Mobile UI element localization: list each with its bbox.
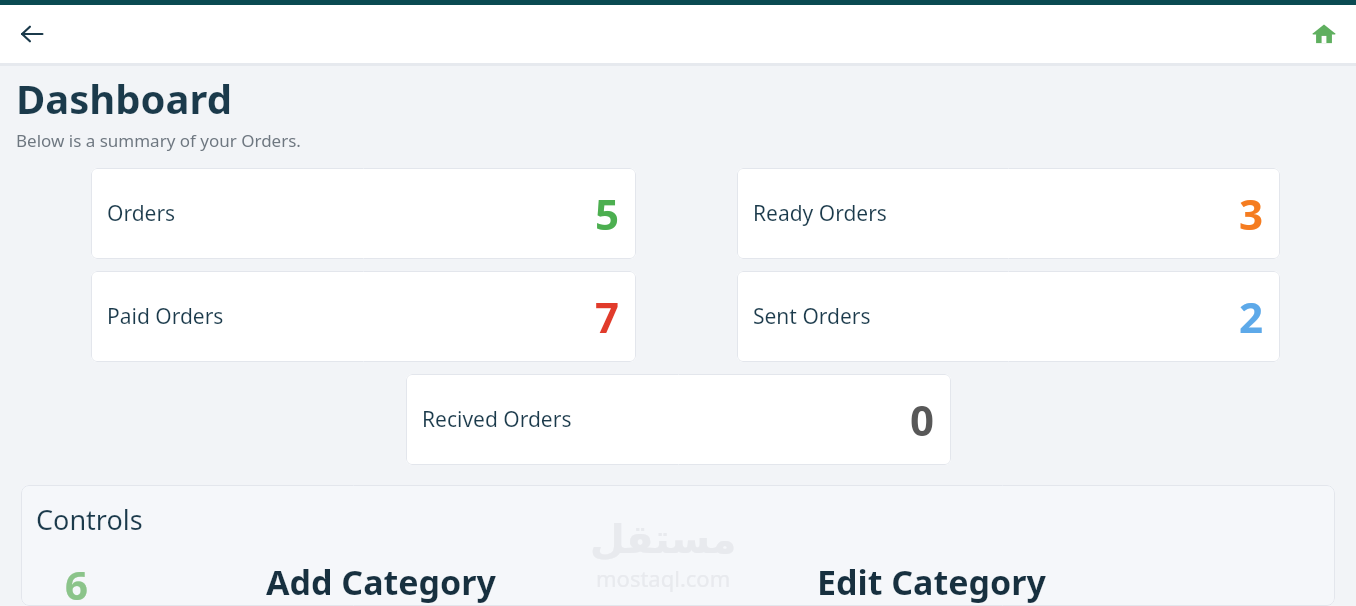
button[interactable]: Add Category [131,559,631,605]
staticText: Recived Orders [422,405,572,434]
staticText: Dashboard [16,71,232,125]
staticText: mostaql.com [596,563,731,593]
staticText: 6 [65,557,88,606]
staticText: 2 [1239,288,1264,345]
staticText: Add Category [266,559,496,605]
staticText: Controls [36,501,143,538]
button[interactable]: Back [8,10,56,58]
button[interactable]: Home [1300,10,1348,58]
button[interactable]: Recived Orders [406,374,951,465]
staticText: Ready Orders [753,199,887,228]
staticText: Paid Orders [107,302,224,331]
staticText: Sent Orders [753,302,871,331]
staticText: 0 [910,391,935,448]
staticText: Below is a summary of your Orders. [16,129,301,152]
staticText: 7 [595,288,620,345]
button[interactable]: Orders [91,168,636,259]
button[interactable]: Paid Orders [91,271,636,362]
button[interactable]: Edit Category [631,559,1231,605]
staticText: مستقل [590,516,737,563]
button[interactable]: Ready Orders [737,168,1280,259]
staticText: Edit Category [817,559,1046,605]
button[interactable]: Sent Orders [737,271,1280,362]
staticText: 3 [1239,185,1264,242]
staticText: Orders [107,199,176,228]
staticText: 5 [595,185,620,242]
